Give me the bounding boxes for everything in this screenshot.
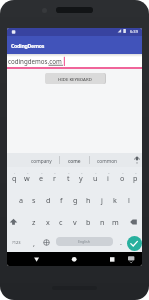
staticText: 4	[54, 171, 56, 174]
staticText: y	[79, 173, 83, 183]
staticText: 0	[135, 171, 137, 174]
staticText: i	[107, 173, 109, 183]
staticText: ,	[33, 238, 35, 248]
staticText: x	[46, 217, 50, 227]
staticText: 1	[14, 171, 16, 174]
staticText: d	[46, 195, 51, 205]
staticText: j	[101, 195, 103, 205]
staticText: b	[86, 217, 91, 227]
staticText: English	[78, 239, 90, 244]
staticText: f	[60, 195, 63, 205]
staticText: u	[93, 173, 98, 183]
staticText: n	[100, 217, 105, 227]
staticText: 6	[81, 171, 83, 174]
staticText: c	[59, 217, 63, 227]
staticText: l	[128, 195, 130, 205]
staticText: z	[32, 217, 36, 227]
staticText: 9	[122, 171, 124, 174]
staticText: q	[12, 173, 17, 183]
staticText: ?123	[12, 240, 21, 245]
staticText: .	[120, 237, 122, 247]
staticText: HIDE KEYBOARD	[58, 76, 92, 82]
staticText: v	[73, 217, 77, 227]
staticText: w	[24, 173, 30, 183]
staticText: e	[39, 173, 44, 183]
staticText: 2	[27, 171, 29, 174]
staticText: CodingDemos	[11, 42, 45, 49]
staticText: 6:39	[130, 29, 138, 34]
staticText: come	[68, 158, 81, 165]
staticText: o	[120, 173, 125, 183]
staticText: 8	[108, 171, 110, 174]
staticText: a	[19, 195, 24, 205]
staticText: t	[67, 173, 70, 183]
staticText: company	[31, 158, 52, 165]
staticText: m	[112, 217, 119, 227]
staticText: p	[133, 173, 138, 183]
staticText: k	[113, 195, 117, 205]
staticText: 5	[68, 171, 70, 174]
staticText: g	[73, 195, 78, 205]
staticText: codingdemos.com	[8, 57, 62, 65]
staticText: r	[53, 173, 56, 183]
staticText: common	[97, 158, 118, 165]
staticText: 7	[95, 171, 97, 174]
staticText: 3	[41, 171, 43, 174]
staticText: s	[32, 195, 36, 205]
staticText: h	[86, 195, 91, 205]
